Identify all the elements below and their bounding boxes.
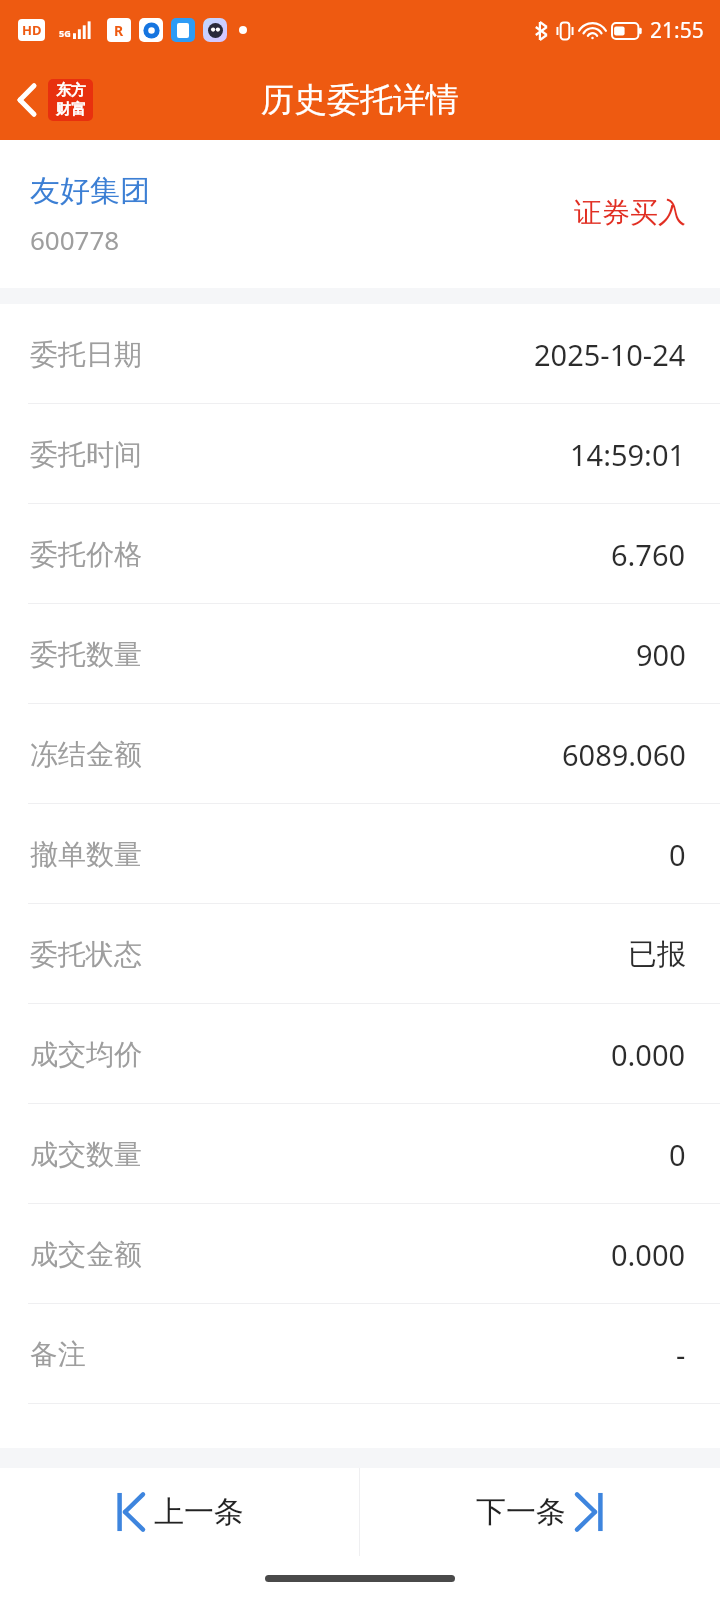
staticText: 600778 xyxy=(30,222,120,257)
staticText: 21:55 xyxy=(650,16,704,45)
button[interactable]: 委托时间 xyxy=(0,404,720,504)
staticText: 已报 xyxy=(628,936,686,973)
button[interactable]: 上一条 xyxy=(0,1468,359,1556)
staticText: 下一条 xyxy=(476,1493,566,1531)
staticText: 成交均价 xyxy=(30,1037,142,1072)
button[interactable]: 下一条 xyxy=(360,1468,720,1556)
staticText: 冻结金额 xyxy=(30,737,142,772)
staticText: 0 xyxy=(669,835,686,874)
button[interactable]: 撤单数量 xyxy=(0,804,720,904)
staticText: 6089.060 xyxy=(562,735,686,774)
staticText: 0.000 xyxy=(611,1235,686,1274)
staticText: 友好集团 xyxy=(30,172,150,210)
staticText: 0 xyxy=(669,1135,686,1174)
staticText: 0.000 xyxy=(611,1035,686,1074)
staticText: 6.760 xyxy=(611,535,686,574)
button[interactable]: 成交数量 xyxy=(0,1104,720,1204)
button[interactable]: 冻结金额 xyxy=(0,704,720,804)
staticText: 东方 xyxy=(56,81,86,100)
staticText: - xyxy=(676,1335,686,1374)
staticText: 备注 xyxy=(30,1337,86,1372)
button[interactable]: 委托数量 xyxy=(0,604,720,704)
staticText: 成交数量 xyxy=(30,1137,142,1172)
staticText: 撤单数量 xyxy=(30,837,142,872)
staticText: 14:59:01 xyxy=(570,435,686,474)
staticText: 900 xyxy=(636,635,686,674)
staticText: 2025-10-24 xyxy=(534,335,686,374)
button[interactable]: 成交金额 xyxy=(0,1204,720,1304)
staticText: 财富 xyxy=(56,100,86,119)
button[interactable]: 委托价格 xyxy=(0,504,720,604)
staticText: 5G xyxy=(59,27,71,39)
button[interactable]: 返回 xyxy=(0,60,103,140)
staticText: R xyxy=(114,21,124,40)
button[interactable]: 委托状态 xyxy=(0,904,720,1004)
staticText: 委托时间 xyxy=(30,437,142,472)
staticText: 成交金额 xyxy=(30,1237,142,1272)
button[interactable]: 委托日期 xyxy=(0,304,720,404)
staticText: 委托数量 xyxy=(30,637,142,672)
staticText: 委托状态 xyxy=(30,937,142,972)
staticText: HD xyxy=(22,21,42,39)
button[interactable]: 备注 xyxy=(0,1304,720,1404)
staticText: 上一条 xyxy=(154,1493,244,1531)
staticText: 委托日期 xyxy=(30,337,142,372)
button[interactable]: 成交均价 xyxy=(0,1004,720,1104)
staticText: 历史委托详情 xyxy=(261,79,459,121)
staticText: 委托价格 xyxy=(30,537,142,572)
staticText: 证券买入 xyxy=(574,195,686,230)
